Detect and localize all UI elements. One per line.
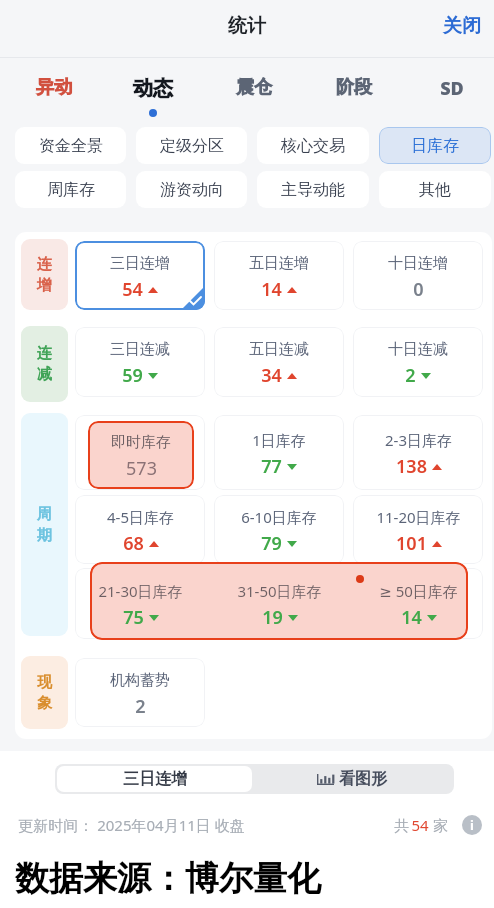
button[interactable]: 21-30日库存 <box>75 568 205 639</box>
button[interactable]: 主导动能 <box>257 171 369 208</box>
staticText: 动态 <box>115 76 191 101</box>
staticText: 定级分区 <box>160 136 224 156</box>
staticText: 象 <box>37 694 52 713</box>
button[interactable] <box>75 568 205 639</box>
button[interactable]: Info <box>462 815 482 835</box>
staticText: 统计 <box>228 14 266 38</box>
button[interactable]: 连 <box>21 239 68 310</box>
staticText: 三日连增 <box>123 769 187 789</box>
button[interactable]: 连 <box>21 326 68 402</box>
button[interactable]: 资金全景 <box>15 127 126 164</box>
staticText: 77 <box>261 454 282 479</box>
staticText: 机构蓄势 <box>110 671 170 690</box>
button[interactable]: 其他 <box>379 171 491 208</box>
button[interactable]: 十日连减 <box>353 327 483 397</box>
button[interactable]: 6-10日库存 <box>214 495 344 564</box>
button[interactable]: 1日库存 <box>214 415 344 490</box>
staticText: 看图形 <box>339 769 387 789</box>
button[interactable]: 周库存 <box>15 171 126 208</box>
button[interactable]: 4-5日库存 <box>75 495 205 564</box>
staticText: 五日连减 <box>249 340 309 359</box>
button[interactable]: 五日连减 <box>214 327 344 397</box>
staticText: 11-20日库存 <box>376 507 461 527</box>
staticText: 期 <box>37 526 52 545</box>
button[interactable]: 机构蓄势 <box>75 658 205 727</box>
button[interactable]: 现 <box>21 656 68 729</box>
staticText: SD <box>414 76 490 101</box>
button[interactable]: 日库存 <box>379 127 491 164</box>
button[interactable]: 三日连增 <box>75 241 205 310</box>
staticText: 阶段 <box>316 76 392 99</box>
staticText: 68 <box>123 531 144 556</box>
staticText: 十日连减 <box>388 340 448 359</box>
button[interactable] <box>214 568 344 639</box>
staticText: 54 <box>122 277 143 302</box>
button[interactable]: 2-3日库存 <box>353 415 483 490</box>
staticText: 54 <box>411 815 429 835</box>
staticText: 2 <box>135 694 146 719</box>
button[interactable]: 阶段 <box>316 58 392 115</box>
staticText: 连 <box>37 255 52 274</box>
button[interactable]: ≥ 50日库存 <box>353 568 483 639</box>
staticText: 31-50日库存 <box>237 581 322 601</box>
staticText: i <box>470 816 474 834</box>
button[interactable]: 关闭 <box>430 10 494 42</box>
staticText: 14 <box>261 277 282 302</box>
staticText: 周库存 <box>47 180 95 200</box>
staticText: 59 <box>122 363 143 388</box>
staticText: 主导动能 <box>281 180 345 200</box>
staticText: 家 <box>429 815 448 835</box>
staticText: 101 <box>396 531 427 556</box>
staticText: ≥ 50日库存 <box>379 581 458 601</box>
staticText: 三日连增 <box>110 254 170 273</box>
staticText: 三日连减 <box>110 340 170 359</box>
button[interactable]: 定级分区 <box>136 127 247 164</box>
button[interactable]: 31-50日库存 <box>214 568 344 639</box>
staticText: 五日连增 <box>249 254 309 273</box>
staticText: 21-30日库存 <box>98 581 183 601</box>
button[interactable]: SD <box>414 58 490 117</box>
button[interactable]: 11-20日库存 <box>353 495 483 564</box>
button[interactable]: 核心交易 <box>257 127 369 164</box>
staticText: 1日库存 <box>252 430 306 450</box>
staticText: 异动 <box>16 76 92 99</box>
button[interactable]: 游资动向 <box>136 171 247 208</box>
button[interactable]: 动态 <box>115 58 191 117</box>
staticText: 79 <box>261 531 282 556</box>
staticText: 19 <box>262 605 283 630</box>
staticText: 0 <box>413 277 424 302</box>
staticText: 2-3日库存 <box>385 430 452 450</box>
staticText: 573 <box>126 456 157 481</box>
staticText: 75 <box>123 605 144 630</box>
button[interactable]: 震仓 <box>216 58 292 115</box>
staticText: 关闭 <box>443 14 481 38</box>
staticText: 游资动向 <box>160 180 224 200</box>
staticText: 减 <box>37 365 52 384</box>
staticText: 其他 <box>419 180 451 200</box>
button[interactable]: 即时库存 <box>88 421 194 489</box>
staticText: 连 <box>37 344 52 363</box>
button[interactable] <box>353 568 483 639</box>
button[interactable]: 看图形 <box>252 766 452 792</box>
button[interactable]: 十日连增 <box>353 241 483 310</box>
staticText: 14 <box>401 605 422 630</box>
button[interactable]: 三日连减 <box>75 327 205 397</box>
staticText: 日库存 <box>411 136 459 156</box>
staticText: 周 <box>37 505 52 524</box>
staticText: 6-10日库存 <box>241 507 317 527</box>
staticText: 34 <box>261 363 282 388</box>
button[interactable]: 五日连增 <box>214 241 344 310</box>
staticText: 十日连增 <box>388 254 448 273</box>
button[interactable] <box>75 415 205 490</box>
staticText: 138 <box>396 454 427 479</box>
button[interactable]: 周 <box>21 413 68 636</box>
staticText: 震仓 <box>216 76 292 99</box>
staticText: 更新时间： 2025年04月11日 收盘 <box>18 815 245 835</box>
button[interactable]: 异动 <box>16 58 92 115</box>
staticText: 2 <box>405 363 416 388</box>
staticText: 资金全景 <box>39 136 103 156</box>
button[interactable]: 三日连增 <box>57 766 252 792</box>
staticText: 核心交易 <box>281 136 345 156</box>
staticText: 数据来源：博尔量化 <box>15 857 321 900</box>
staticText: 增 <box>37 276 52 295</box>
